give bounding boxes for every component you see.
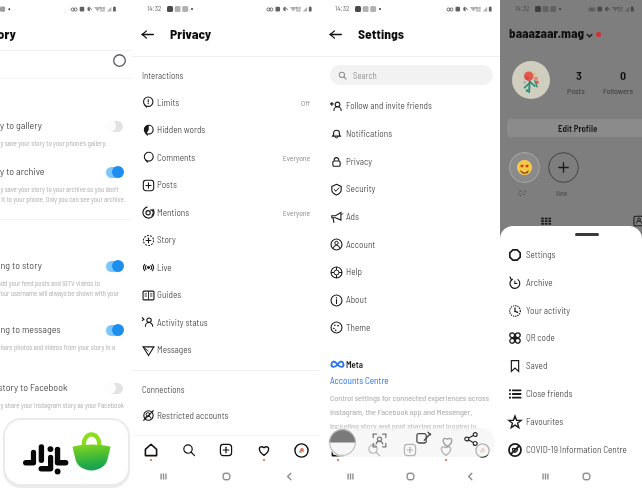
button[interactable]: [320, 148, 500, 175]
button[interactable]: Recents: [154, 467, 172, 485]
button[interactable]: Switch account: [586, 32, 593, 39]
button[interactable]: Recents: [536, 467, 554, 485]
button[interactable]: Back: [136, 23, 158, 45]
button[interactable]: Home: [577, 467, 595, 485]
button[interactable]: [0, 376, 132, 400]
button[interactable]: Bazaar: [5, 420, 128, 484]
button[interactable]: [132, 89, 320, 116]
button[interactable]: Home: [132, 437, 170, 463]
staticText: QR code: [526, 332, 555, 343]
button[interactable]: [0, 318, 132, 342]
button[interactable]: Home: [217, 467, 235, 485]
button[interactable]: [132, 227, 320, 254]
staticText: Saved: [526, 360, 548, 371]
button[interactable]: [132, 337, 320, 364]
staticText: ♫♪: [517, 189, 527, 197]
staticText: Everyone: [132, 153, 310, 162]
staticText: Hidden words: [157, 124, 206, 135]
staticText: Live: [157, 262, 172, 273]
staticText: Meta: [346, 359, 364, 370]
button[interactable]: [320, 93, 500, 120]
button[interactable]: [320, 259, 500, 286]
button[interactable]: [500, 381, 642, 408]
button[interactable]: Back: [280, 467, 298, 485]
button[interactable]: [500, 297, 642, 324]
button[interactable]: Activity: [245, 437, 283, 463]
button[interactable]: Edit Profile: [507, 119, 642, 137]
button[interactable]: New highlight: [548, 152, 579, 183]
button[interactable]: [500, 269, 642, 296]
staticText: Help: [346, 266, 362, 277]
button[interactable]: [132, 172, 320, 199]
staticText: their story. Your username will always b…: [0, 289, 119, 297]
button[interactable]: [320, 120, 500, 147]
staticText: Save story to archive: [0, 165, 45, 177]
staticText: People can share photos and videos from …: [0, 343, 116, 351]
button[interactable]: [500, 436, 642, 463]
button[interactable]: [132, 199, 320, 226]
button[interactable]: [132, 117, 320, 144]
button[interactable]: [132, 309, 320, 336]
staticText: Privacy: [346, 156, 372, 167]
button[interactable]: [500, 353, 642, 380]
button[interactable]: [132, 144, 320, 171]
button[interactable]: Recents: [341, 467, 359, 485]
staticText: Automatically save your story to your ar…: [0, 185, 119, 193]
staticText: Story: [157, 234, 176, 245]
staticText: including story and post sharing and log…: [330, 421, 479, 431]
button[interactable]: New post: [207, 437, 245, 463]
button[interactable]: New post: [392, 437, 428, 463]
button[interactable]: Home: [320, 437, 356, 463]
staticText: Everyone: [132, 208, 310, 217]
staticText: People can add your feed posts and IGTV …: [0, 279, 101, 287]
staticText: Posts: [157, 179, 177, 190]
button[interactable]: [320, 287, 500, 314]
staticText: Archive: [526, 277, 553, 288]
button[interactable]: [500, 242, 642, 269]
staticText: New: [556, 189, 568, 197]
staticText: Theme: [346, 322, 371, 333]
button[interactable]: Share options: [328, 428, 495, 457]
button[interactable]: [500, 408, 642, 435]
button[interactable]: [320, 314, 500, 341]
staticText: Activity status: [157, 317, 208, 328]
button[interactable]: Search: [170, 437, 208, 463]
button[interactable]: [500, 325, 642, 352]
button[interactable]: [132, 282, 320, 309]
staticText: Off: [132, 98, 310, 107]
staticText: Allow sharing to messages: [0, 323, 61, 335]
button[interactable]: Profile: [282, 437, 320, 463]
button[interactable]: [330, 373, 400, 387]
staticText: Messages: [157, 344, 192, 355]
staticText: have to save it to your phone. Only you …: [0, 195, 126, 203]
staticText: Follow and invite friends: [346, 100, 432, 111]
button[interactable]: Home: [401, 467, 419, 485]
button[interactable]: Back: [324, 23, 346, 45]
button[interactable]: Search: [356, 437, 392, 463]
button[interactable]: Highlight: [509, 152, 540, 183]
staticText: About: [346, 294, 367, 305]
staticText: Allow sharing to story: [0, 259, 42, 271]
button[interactable]: [0, 114, 132, 138]
button[interactable]: [320, 204, 500, 231]
staticText: Limits: [157, 97, 180, 108]
button[interactable]: Back: [461, 467, 479, 485]
button[interactable]: [132, 254, 320, 281]
button[interactable]: Profile: [464, 437, 500, 463]
button[interactable]: [0, 160, 132, 184]
staticText: Automatically share your Instagram story…: [0, 401, 124, 409]
staticText: Save story to gallery: [0, 119, 42, 131]
button[interactable]: Search: [330, 65, 493, 85]
staticText: Share your story to Facebook: [0, 381, 68, 393]
staticText: Edit Profile: [558, 123, 598, 134]
button[interactable]: [320, 176, 500, 203]
staticText: Accounts Centre: [330, 375, 389, 386]
button[interactable]: [132, 402, 320, 429]
staticText: Close friends: [526, 388, 573, 399]
button[interactable]: [0, 254, 132, 278]
button[interactable]: [320, 231, 500, 258]
staticText: Mentions: [157, 207, 190, 218]
staticText: Your activity: [526, 305, 571, 316]
button[interactable]: Activity: [428, 437, 464, 463]
staticText: 3: [576, 68, 582, 82]
